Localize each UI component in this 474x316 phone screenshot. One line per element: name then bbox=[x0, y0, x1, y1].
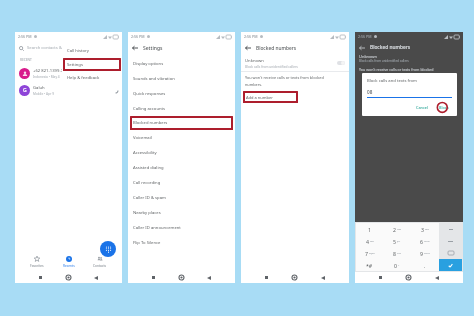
staticText: 8 bbox=[393, 250, 396, 257]
staticText: Call recording bbox=[133, 180, 161, 186]
staticText: Voicemail bbox=[133, 135, 152, 141]
staticText: 7 bbox=[365, 250, 368, 257]
staticText: Blocked numbers bbox=[256, 45, 297, 52]
staticText: 9 bbox=[420, 250, 423, 257]
staticText: . bbox=[424, 262, 426, 269]
staticText: Add a number bbox=[246, 95, 273, 100]
staticText: 2:56 PM bbox=[244, 34, 258, 39]
button[interactable]: Delete bbox=[439, 247, 462, 259]
button[interactable]: 0 bbox=[383, 259, 411, 271]
button[interactable]: Back bbox=[245, 45, 251, 51]
staticText: + bbox=[398, 264, 400, 267]
button[interactable]: 7 bbox=[356, 247, 383, 259]
staticText: GHI bbox=[370, 240, 374, 243]
button[interactable]: 4 bbox=[356, 235, 383, 247]
staticText: 5 bbox=[393, 238, 396, 245]
button[interactable]: Cancel bbox=[413, 104, 432, 111]
button[interactable]: Backspace bbox=[439, 223, 462, 235]
staticText: 1 bbox=[368, 226, 371, 233]
staticText: Help & feedback bbox=[67, 75, 100, 81]
button[interactable]: Nearby places bbox=[128, 205, 235, 220]
button[interactable]: 6 bbox=[411, 235, 439, 247]
button[interactable]: +62 821-1399-7xx bbox=[15, 65, 122, 82]
staticText: Blocked numbers bbox=[370, 44, 411, 51]
button[interactable]: Flip To Silence bbox=[128, 235, 235, 250]
staticText: +62 821-1399-7xx bbox=[33, 68, 68, 74]
staticText: Sounds and vibration bbox=[133, 76, 175, 82]
staticText: WXYZ bbox=[424, 252, 430, 255]
button[interactable]: *# bbox=[356, 259, 383, 271]
staticText: Search contacts & places bbox=[27, 45, 76, 51]
button[interactable]: 9 bbox=[411, 247, 439, 259]
button[interactable]: Calling accounts bbox=[128, 101, 235, 116]
button[interactable]: 2 bbox=[383, 223, 411, 235]
button[interactable]: Accessibility bbox=[128, 145, 235, 160]
staticText: Nearby places bbox=[133, 210, 161, 216]
button[interactable]: Favorites bbox=[26, 254, 48, 270]
staticText: Favorites bbox=[30, 264, 44, 268]
staticText: 2 bbox=[393, 226, 396, 233]
staticText: Unknown bbox=[359, 54, 377, 59]
button[interactable]: Quick responses bbox=[128, 86, 235, 101]
staticText: Mobile • Apr 9 bbox=[33, 92, 55, 96]
staticText: Block calls from unidentified callers bbox=[245, 65, 298, 69]
staticText: 0 bbox=[394, 262, 397, 269]
staticText: DEF bbox=[425, 228, 429, 231]
button[interactable]: Assisted dialing bbox=[128, 160, 235, 175]
staticText: Settings bbox=[143, 45, 163, 52]
staticText: G bbox=[23, 87, 27, 94]
staticText: PQRS bbox=[369, 252, 375, 255]
staticText: Caller ID announcement bbox=[133, 225, 181, 231]
button[interactable]: Caller ID & spam bbox=[128, 190, 235, 205]
button[interactable]: Caller ID announcement bbox=[128, 220, 235, 235]
button[interactable]: Back bbox=[359, 45, 365, 51]
staticText: 2:56 PM bbox=[358, 34, 372, 39]
other: Call bbox=[113, 88, 118, 93]
staticText: Blocked numbers bbox=[133, 120, 168, 126]
button[interactable]: Block bbox=[436, 104, 452, 111]
staticText: TUV bbox=[397, 252, 402, 255]
staticText: Assisted dialing bbox=[133, 165, 164, 171]
button[interactable]: Done bbox=[439, 259, 462, 271]
button[interactable]: Settings bbox=[63, 58, 121, 71]
staticText: Cancel bbox=[416, 105, 429, 110]
staticText: Block bbox=[439, 105, 449, 110]
staticText: Settings bbox=[67, 62, 83, 68]
button[interactable]: Display options bbox=[128, 56, 235, 71]
button[interactable]: Dialpad bbox=[100, 241, 116, 257]
staticText: Accessibility bbox=[133, 150, 157, 156]
button[interactable]: Call history bbox=[62, 44, 122, 58]
staticText: 3 bbox=[421, 226, 424, 233]
button[interactable]: 3 bbox=[411, 223, 439, 235]
button[interactable]: Help & feedback bbox=[62, 71, 122, 85]
staticText: 08 bbox=[367, 89, 373, 95]
button[interactable]: Unknown bbox=[241, 55, 349, 71]
button[interactable]: 1 bbox=[356, 223, 383, 235]
button[interactable]: Sounds and vibration bbox=[128, 71, 235, 86]
staticText: You won't receive calls or texts from bl… bbox=[245, 75, 324, 80]
button[interactable]: 5 bbox=[383, 235, 411, 247]
button[interactable]: Back bbox=[132, 45, 138, 51]
staticText: Calling accounts bbox=[133, 106, 166, 112]
button[interactable]: Space bbox=[439, 235, 462, 247]
button[interactable]: Recents bbox=[59, 254, 79, 270]
button[interactable]: 8 bbox=[383, 247, 411, 259]
button[interactable]: . bbox=[411, 259, 439, 271]
staticText: Contacts bbox=[93, 264, 107, 268]
staticText: You won't receive calls or texts from bl… bbox=[359, 67, 434, 72]
staticText: Quick responses bbox=[133, 91, 166, 97]
staticText: Caller ID & spam bbox=[133, 195, 166, 201]
staticText: numbers. bbox=[245, 82, 263, 87]
button[interactable]: Contacts bbox=[89, 254, 111, 270]
staticText: Galuh bbox=[33, 85, 45, 91]
staticText: Unknown bbox=[245, 58, 264, 64]
button[interactable]: Call recording bbox=[128, 175, 235, 190]
button[interactable]: Blocked numbers bbox=[130, 116, 233, 130]
staticText: 6 bbox=[420, 238, 423, 245]
staticText: 4 bbox=[366, 238, 369, 245]
button[interactable]: G bbox=[15, 82, 122, 99]
staticText: Call history bbox=[67, 48, 89, 54]
staticText: 2:56 PM bbox=[18, 34, 32, 39]
button[interactable]: Add a number bbox=[243, 91, 298, 103]
button[interactable]: Voicemail bbox=[128, 130, 235, 145]
